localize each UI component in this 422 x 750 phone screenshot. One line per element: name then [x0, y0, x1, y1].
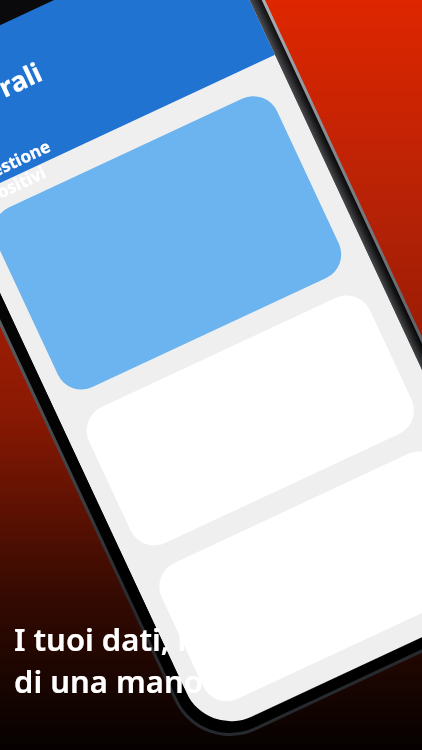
staticText: estione [0, 134, 54, 182]
button[interactable]: Anteprima dell'app su smartphone [0, 0, 422, 750]
button[interactable]: I tuoi dati, nel palmo [14, 618, 414, 702]
staticText: positivi [0, 160, 50, 208]
staticText: rali [0, 53, 48, 105]
staticText: di una mano [14, 660, 203, 702]
staticText: I tuoi dati, nel palmo [14, 618, 328, 660]
